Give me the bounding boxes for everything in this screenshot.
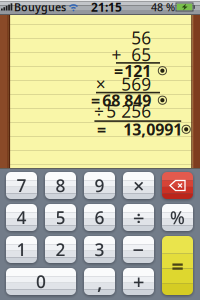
button[interactable]: 4 [6,204,37,231]
staticText: 5 256 [106,99,151,122]
staticText: = [171,251,183,280]
staticText: × [133,172,144,199]
button[interactable]: 2 [45,236,76,263]
staticText: 0 [36,270,46,293]
button[interactable]: Delete [162,172,193,199]
button[interactable]: 7 [6,172,37,199]
staticText: 121 [124,60,151,81]
staticText: 3 [94,238,104,261]
button[interactable]: ÷ [123,204,154,231]
staticText: 21:15 [91,0,122,15]
button[interactable]: Select result [157,66,167,76]
staticText: % [170,206,185,229]
button[interactable]: + [123,268,154,295]
button[interactable]: 1 [6,236,37,263]
staticText: + [133,268,144,295]
button[interactable]: , [84,268,115,295]
button[interactable]: 6 [84,204,115,231]
staticText: ÷ [94,99,104,122]
staticText: 4 [16,206,26,229]
button[interactable]: 3 [84,236,115,263]
staticText: 68 849 [102,90,151,111]
staticText: 9 [94,174,104,197]
staticText: 65 [131,43,151,66]
staticText: 569 [121,72,151,95]
staticText: 56 [131,26,151,49]
staticText: + [112,43,122,66]
button[interactable]: % [162,204,193,231]
staticText: 2 [55,238,65,261]
staticText: 1 [16,238,26,261]
staticText: = [97,119,106,140]
button[interactable]: 5 [45,204,76,231]
staticText: 13,0991 [123,119,182,140]
button[interactable]: × [123,172,154,199]
staticText: − [132,236,144,263]
staticText: × [96,72,106,95]
button[interactable]: Select result [157,95,167,105]
staticText: = [91,90,100,111]
staticText: 7 [16,174,26,197]
staticText: = [114,60,123,81]
staticText: , [97,268,102,295]
button[interactable]: 8 [45,172,76,199]
staticText: 48 % [151,0,175,14]
button[interactable]: − [123,236,154,263]
button[interactable]: = [162,236,193,295]
staticText: ÷ [133,204,144,231]
button[interactable]: 0 [6,268,76,295]
button[interactable]: Select result [181,124,191,134]
staticText: 8 [55,174,65,197]
button[interactable]: 9 [84,172,115,199]
staticText: 5 [55,206,65,229]
staticText: Bouygues [14,0,66,14]
staticText: 6 [94,206,104,229]
